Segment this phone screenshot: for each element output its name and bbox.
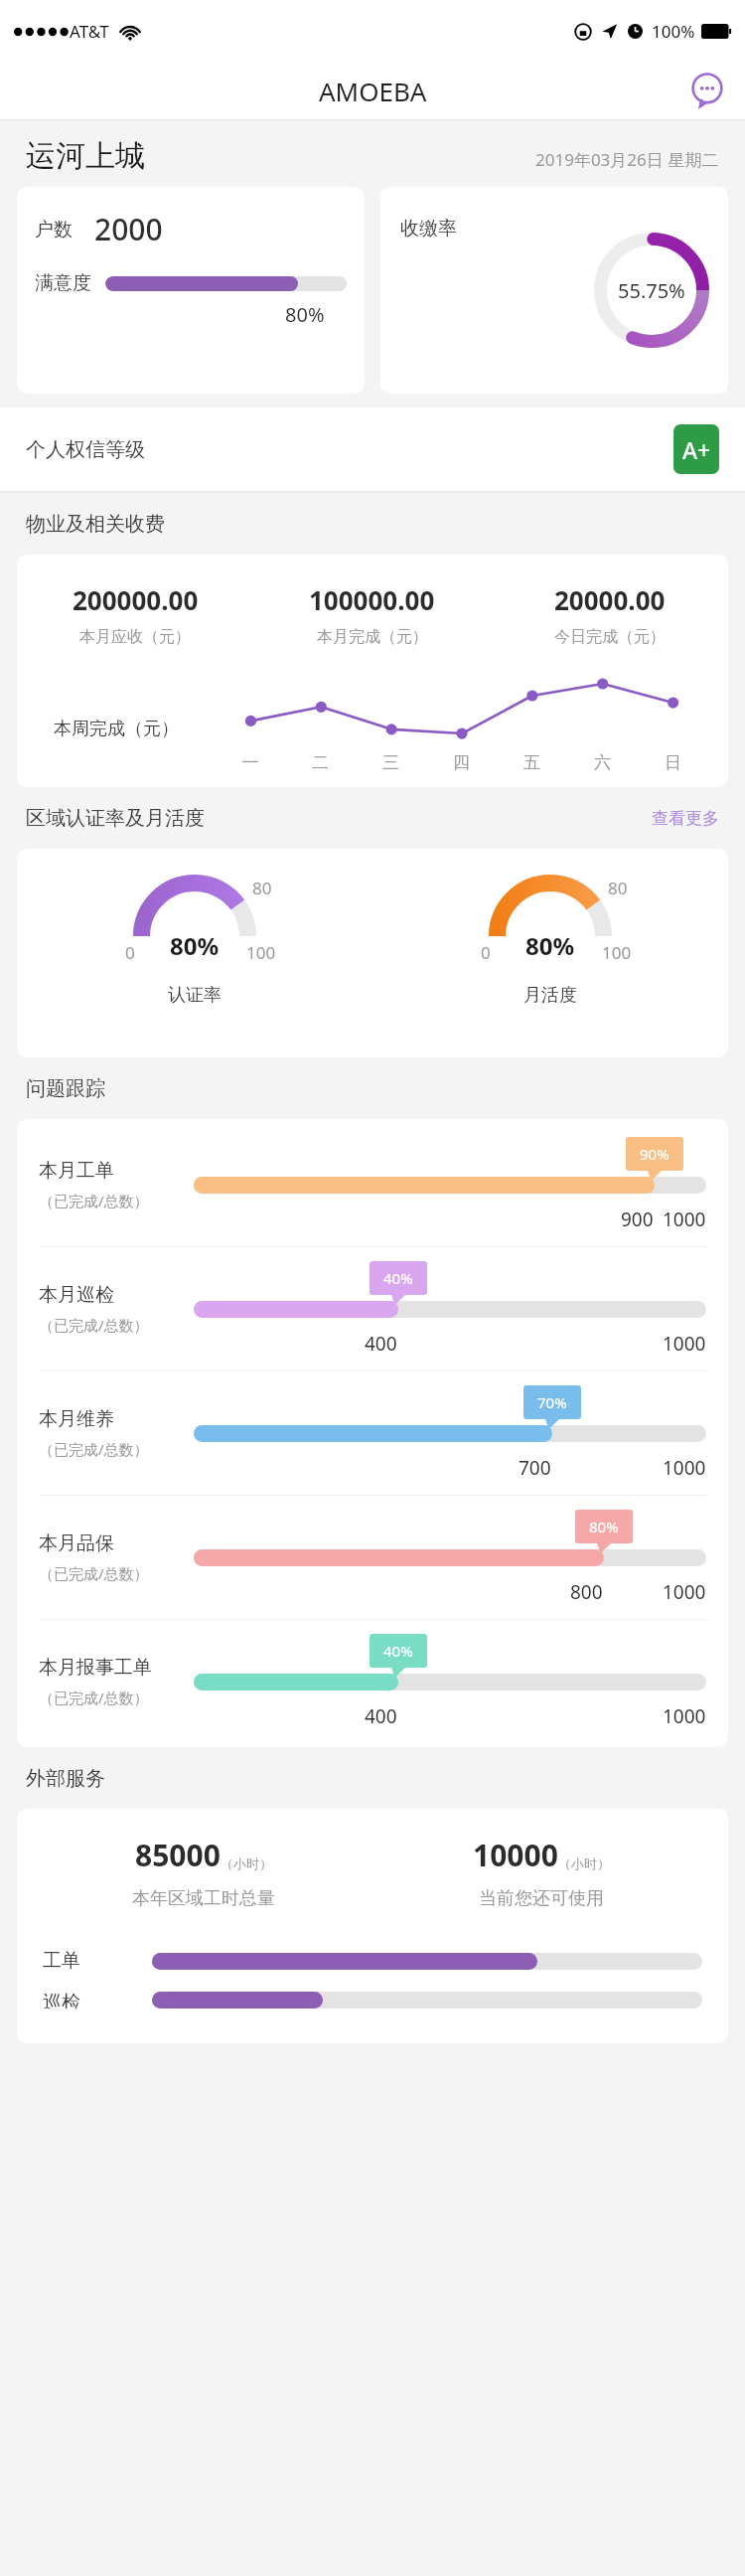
button[interactable]: 收缴率 bbox=[380, 187, 728, 394]
button[interactable]: 本月品保 bbox=[17, 1496, 728, 1619]
staticText: 本月品保 bbox=[39, 1531, 114, 1555]
staticText: AMOEBA bbox=[319, 74, 427, 108]
staticText: 本年区域工时总量 bbox=[132, 1887, 275, 1910]
staticText: 工单 bbox=[43, 1949, 152, 1973]
staticText: 查看更多 bbox=[652, 808, 719, 829]
staticText: 二 bbox=[285, 752, 356, 773]
staticText: 巡检 bbox=[43, 1991, 152, 2009]
staticText: 70% bbox=[537, 1392, 567, 1412]
button[interactable]: 80 bbox=[17, 849, 728, 1057]
button[interactable]: 本月工单 bbox=[17, 1123, 728, 1246]
button[interactable]: 个人权信等级 bbox=[0, 407, 745, 491]
staticText: （已完成/总数） bbox=[39, 1191, 149, 1210]
staticText: 700 bbox=[519, 1455, 551, 1481]
staticText: 收缴率 bbox=[400, 217, 457, 241]
staticText: （小时） bbox=[558, 1855, 610, 1871]
staticText: （已完成/总数） bbox=[39, 1315, 149, 1335]
staticText: 月活度 bbox=[523, 984, 577, 1007]
staticText: 外部服务 bbox=[26, 1766, 105, 1791]
staticText: 个人权信等级 bbox=[26, 437, 145, 462]
staticText: AT&T bbox=[70, 20, 109, 43]
staticText: 80 bbox=[608, 877, 628, 899]
staticText: （已完成/总数） bbox=[39, 1688, 149, 1707]
staticText: 2019年03月26日 星期二 bbox=[535, 148, 719, 171]
staticText: 200000.00 bbox=[73, 582, 199, 617]
staticText: 80% bbox=[589, 1517, 619, 1536]
staticText: 一 bbox=[216, 752, 285, 773]
button[interactable]: Messages bbox=[685, 69, 729, 112]
staticText: 六 bbox=[567, 752, 638, 773]
staticText: 户数 bbox=[35, 218, 73, 241]
staticText: 日 bbox=[638, 752, 708, 773]
staticText: 80% bbox=[170, 929, 220, 962]
staticText: 900 bbox=[621, 1207, 654, 1232]
staticText: （小时） bbox=[221, 1855, 272, 1871]
staticText: 四 bbox=[426, 752, 497, 773]
staticText: 80% bbox=[525, 929, 575, 962]
staticText: 本月巡检 bbox=[39, 1283, 114, 1307]
staticText: 本月完成（元） bbox=[317, 627, 428, 647]
staticText: 区域认证率及月活度 bbox=[26, 806, 205, 831]
staticText: 本周完成（元） bbox=[54, 718, 179, 740]
staticText: （已完成/总数） bbox=[39, 1439, 149, 1459]
staticText: 2000 bbox=[94, 209, 163, 249]
staticText: 400 bbox=[365, 1331, 397, 1357]
staticText: 1000 bbox=[663, 1455, 706, 1481]
staticText: 本月应收（元） bbox=[79, 627, 191, 647]
staticText: 满意度 bbox=[35, 271, 91, 295]
staticText: （已完成/总数） bbox=[39, 1563, 149, 1583]
staticText: 本月工单 bbox=[39, 1159, 114, 1183]
staticText: 1000 bbox=[663, 1331, 706, 1357]
staticText: 0 bbox=[481, 941, 491, 964]
staticText: 800 bbox=[570, 1579, 603, 1605]
staticText: 三 bbox=[356, 752, 426, 773]
staticText: 100 bbox=[246, 941, 276, 964]
button[interactable]: 85000 bbox=[17, 1809, 728, 2043]
button[interactable]: 本月报事工单 bbox=[17, 1620, 728, 1743]
staticText: 问题跟踪 bbox=[26, 1076, 105, 1101]
staticText: 10000 bbox=[473, 1835, 558, 1875]
button[interactable]: 200000.00 bbox=[17, 555, 728, 787]
staticText: 400 bbox=[365, 1703, 397, 1729]
staticText: 55.75% bbox=[618, 277, 685, 304]
staticText: 100 bbox=[602, 941, 632, 964]
staticText: 本月报事工单 bbox=[39, 1656, 152, 1680]
staticText: 本月维养 bbox=[39, 1407, 114, 1431]
staticText: A+ bbox=[682, 434, 711, 465]
staticText: 运河上城 bbox=[26, 137, 145, 175]
button[interactable]: 户数 bbox=[17, 187, 365, 394]
staticText: 今日完成（元） bbox=[554, 627, 666, 647]
button[interactable]: 查看更多 bbox=[652, 808, 719, 829]
staticText: 40% bbox=[383, 1268, 413, 1288]
staticText: 1000 bbox=[663, 1703, 706, 1729]
staticText: 85000 bbox=[135, 1835, 221, 1875]
staticText: 100000.00 bbox=[309, 582, 435, 617]
staticText: 40% bbox=[383, 1641, 413, 1661]
staticText: 1000 bbox=[663, 1579, 706, 1605]
staticText: 90% bbox=[640, 1144, 670, 1164]
button[interactable]: 本月维养 bbox=[17, 1371, 728, 1495]
staticText: 100% bbox=[652, 20, 695, 43]
staticText: 五 bbox=[497, 752, 567, 773]
staticText: 1000 bbox=[663, 1207, 706, 1232]
button[interactable]: 本月巡检 bbox=[17, 1247, 728, 1370]
staticText: 物业及相关收费 bbox=[26, 512, 165, 537]
staticText: 80 bbox=[252, 877, 272, 899]
staticText: 80% bbox=[285, 301, 325, 328]
staticText: 认证率 bbox=[168, 984, 222, 1007]
staticText: 当前您还可使用 bbox=[479, 1887, 604, 1910]
staticText: 0 bbox=[125, 941, 135, 964]
staticText: 20000.00 bbox=[554, 582, 666, 617]
